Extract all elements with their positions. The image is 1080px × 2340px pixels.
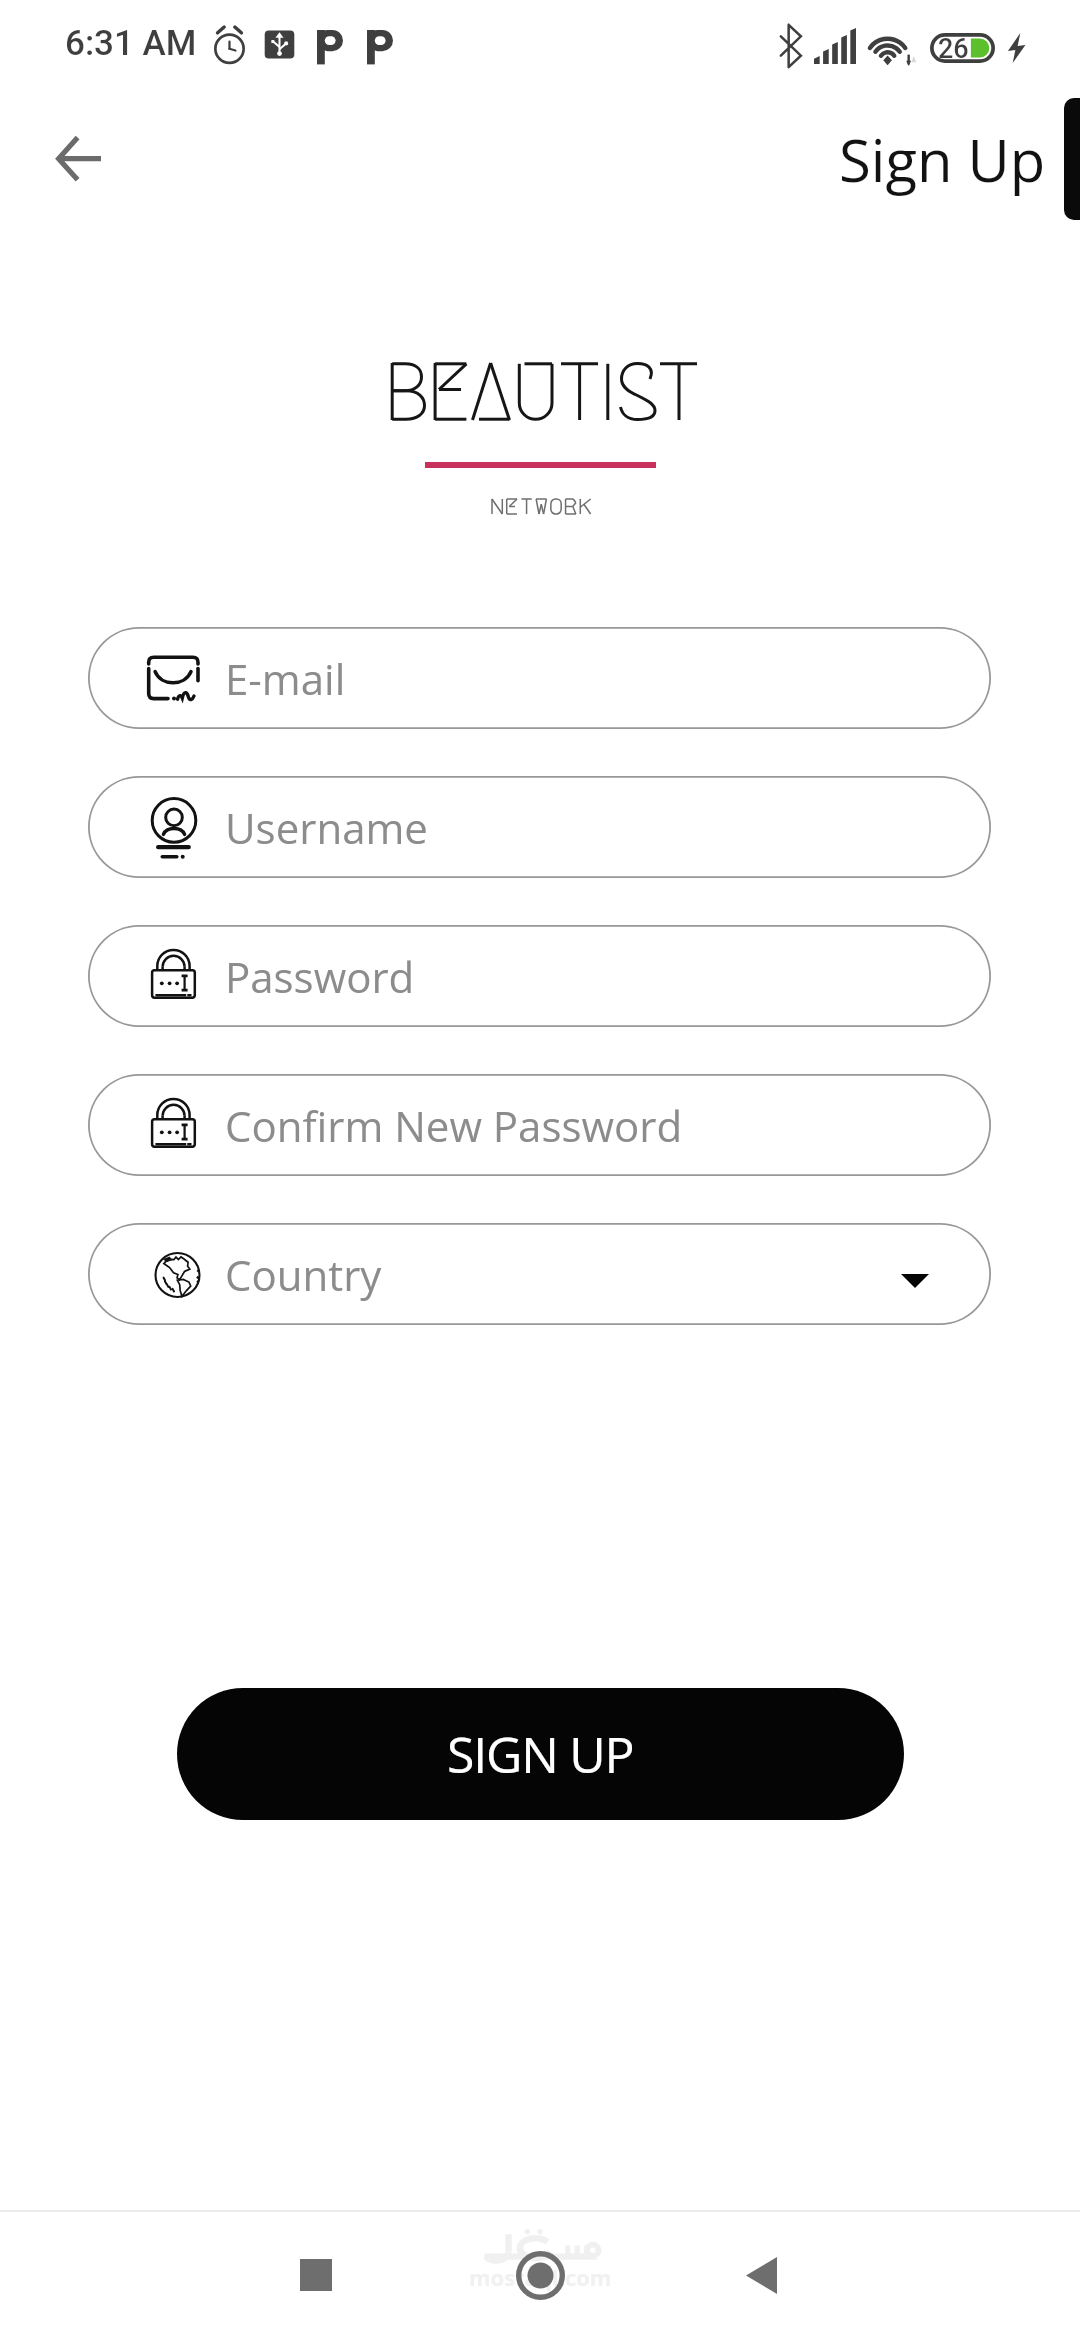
button[interactable]: Username <box>88 776 991 878</box>
button[interactable]: Home <box>480 2215 600 2335</box>
button[interactable]: Back <box>30 112 126 208</box>
button[interactable]: SIGN UP <box>177 1688 904 1820</box>
staticText: mostaql.com <box>469 2262 612 2292</box>
staticText: Confirm New Password <box>225 1097 683 1154</box>
button[interactable]: Back <box>701 2215 821 2335</box>
staticText: 26 <box>938 33 969 63</box>
staticText: 6:31 AM <box>65 23 197 64</box>
button[interactable]: Country <box>88 1223 991 1325</box>
staticText: Country <box>225 1246 382 1303</box>
staticText: Username <box>225 799 428 856</box>
staticText: Sign Up <box>839 120 1046 199</box>
staticText: SIGN UP <box>447 1720 634 1788</box>
button[interactable]: Confirm New Password <box>88 1074 991 1176</box>
button[interactable]: Password <box>88 925 991 1027</box>
button[interactable]: E-mail <box>88 627 991 729</box>
staticText: E-mail <box>225 650 346 707</box>
staticText: Password <box>225 948 415 1005</box>
button[interactable]: Recent apps <box>256 2215 376 2335</box>
